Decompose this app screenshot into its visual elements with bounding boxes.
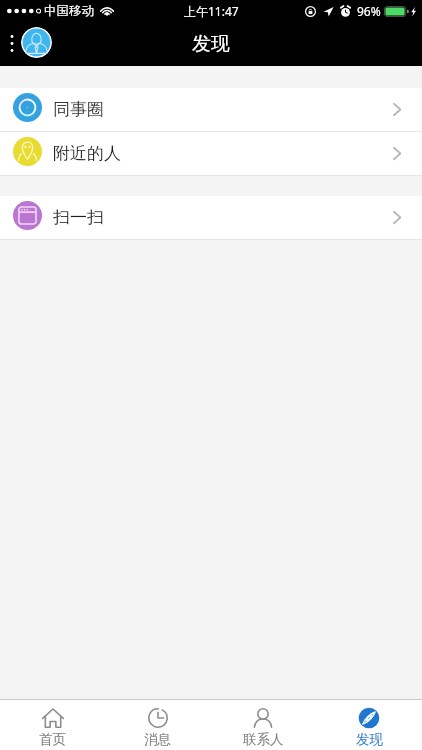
staticText: 96% (357, 3, 381, 19)
button[interactable]: Profile (21, 27, 52, 58)
button[interactable]: 首页 (0, 700, 105, 750)
staticText: 消息 (144, 731, 171, 748)
button[interactable]: 发现 (316, 700, 422, 750)
staticText: 联系人 (243, 731, 284, 748)
staticText: 发现 (356, 731, 383, 748)
staticText: 上午11:47 (184, 3, 239, 19)
button[interactable]: 同事圈 (0, 88, 422, 131)
staticText: 中国移动 (44, 3, 94, 19)
staticText: 首页 (39, 731, 66, 748)
button[interactable]: 附近的人 (0, 132, 422, 175)
button[interactable]: 消息 (105, 700, 210, 750)
button[interactable]: 扫一扫 (0, 196, 422, 239)
button[interactable]: More options (0, 21, 21, 66)
staticText: 同事圈 (53, 99, 104, 120)
staticText: 发现 (192, 32, 230, 56)
staticText: 附近的人 (53, 143, 121, 164)
staticText: 扫一扫 (53, 207, 104, 228)
button[interactable]: 联系人 (210, 700, 316, 750)
